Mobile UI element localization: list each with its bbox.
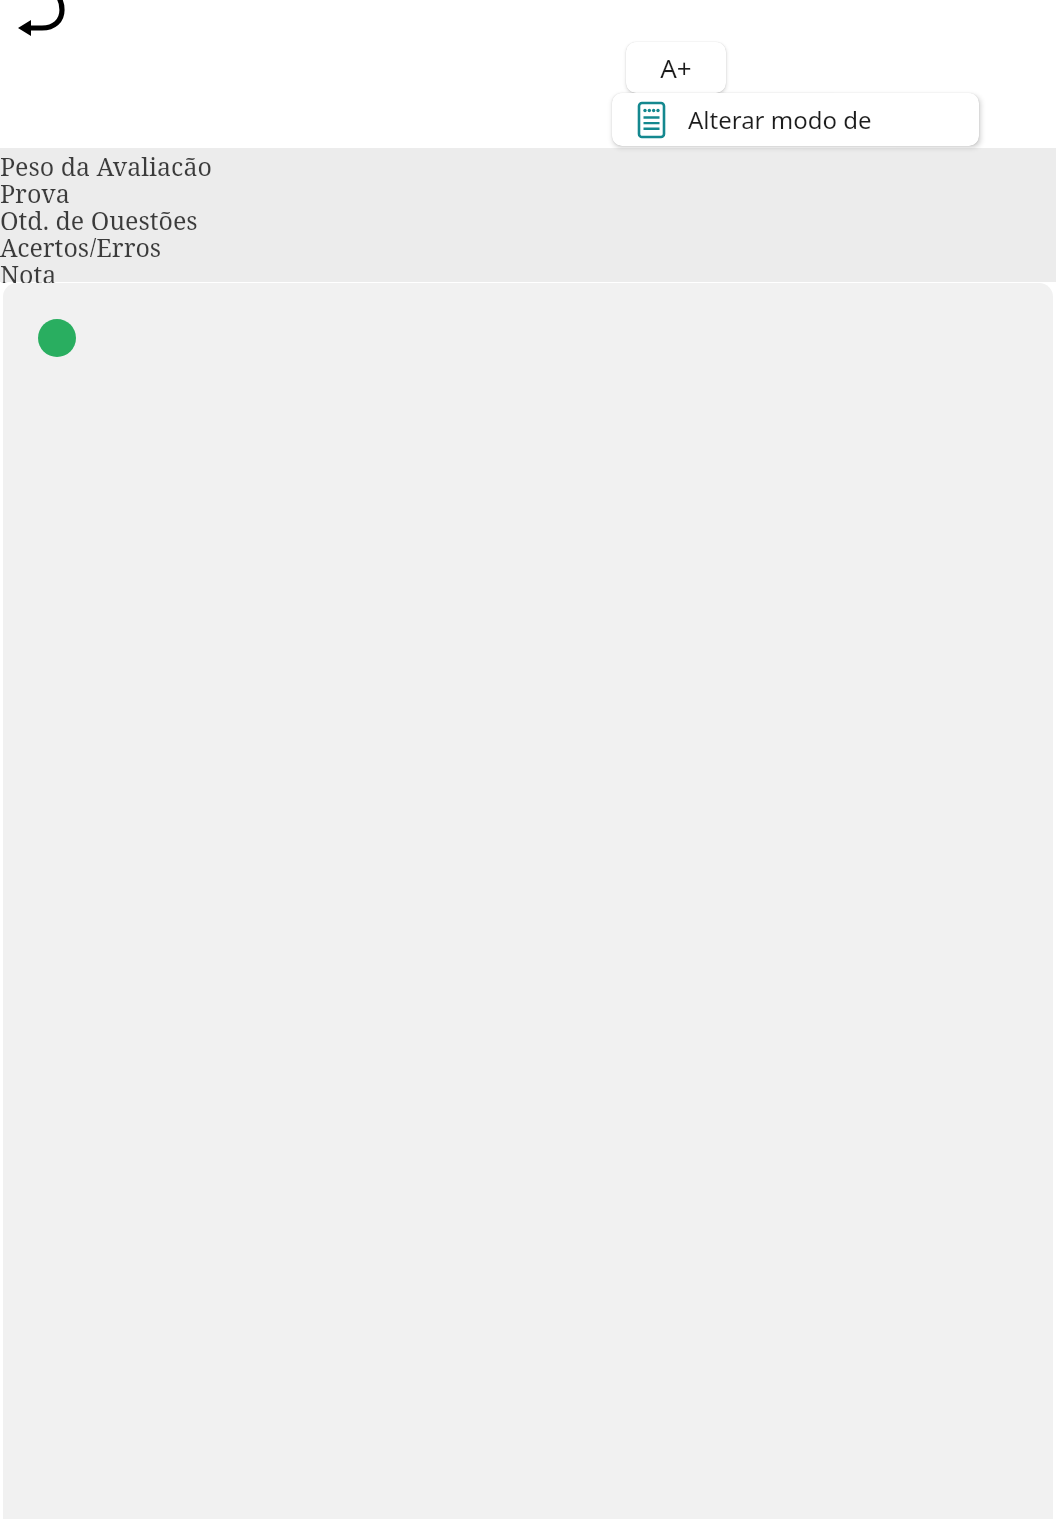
- staticText: Peso da Avaliação: [0, 149, 212, 176]
- button[interactable]: Voltar: [14, 0, 70, 40]
- staticText: Nota: [0, 257, 57, 283]
- staticText: Acertos/Erros: [0, 230, 162, 257]
- button[interactable]: A+: [626, 42, 726, 93]
- button[interactable]: [38, 319, 76, 357]
- staticText: A+: [660, 50, 692, 85]
- staticText: Qtd. de Questões: [0, 203, 198, 230]
- staticText: Alterar modo de visualização: [688, 103, 979, 136]
- staticText: Prova: [0, 176, 70, 203]
- button[interactable]: Alterar modo de visualização: [612, 93, 979, 146]
